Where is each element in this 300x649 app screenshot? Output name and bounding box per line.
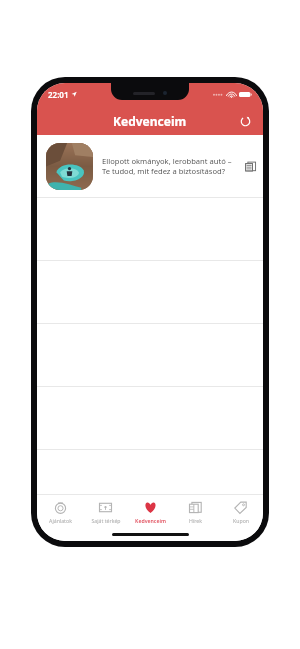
staticText: Ajánlatok [49,517,72,524]
staticText: Kedvenceim [135,517,166,524]
staticText: Saját térkép [91,517,121,524]
button[interactable]: Saját térkép [83,495,128,528]
staticText: Hírek [189,517,202,524]
staticText: Ellopott okmányok, lerobbant autó – Te t… [102,156,240,176]
button[interactable]: Kedvenceim [128,495,173,528]
button[interactable]: Hírek [173,495,218,528]
staticText: 22:01 [48,89,69,100]
staticText: Kupon [233,517,249,524]
button[interactable]: Kupon [218,495,263,528]
button[interactable]: Ellopott okmányok, lerobbant autó – Te t… [37,135,263,197]
button[interactable]: Refresh [235,111,255,131]
staticText: Kedvenceim [113,113,187,129]
button[interactable]: Ajánlatok [37,495,83,528]
